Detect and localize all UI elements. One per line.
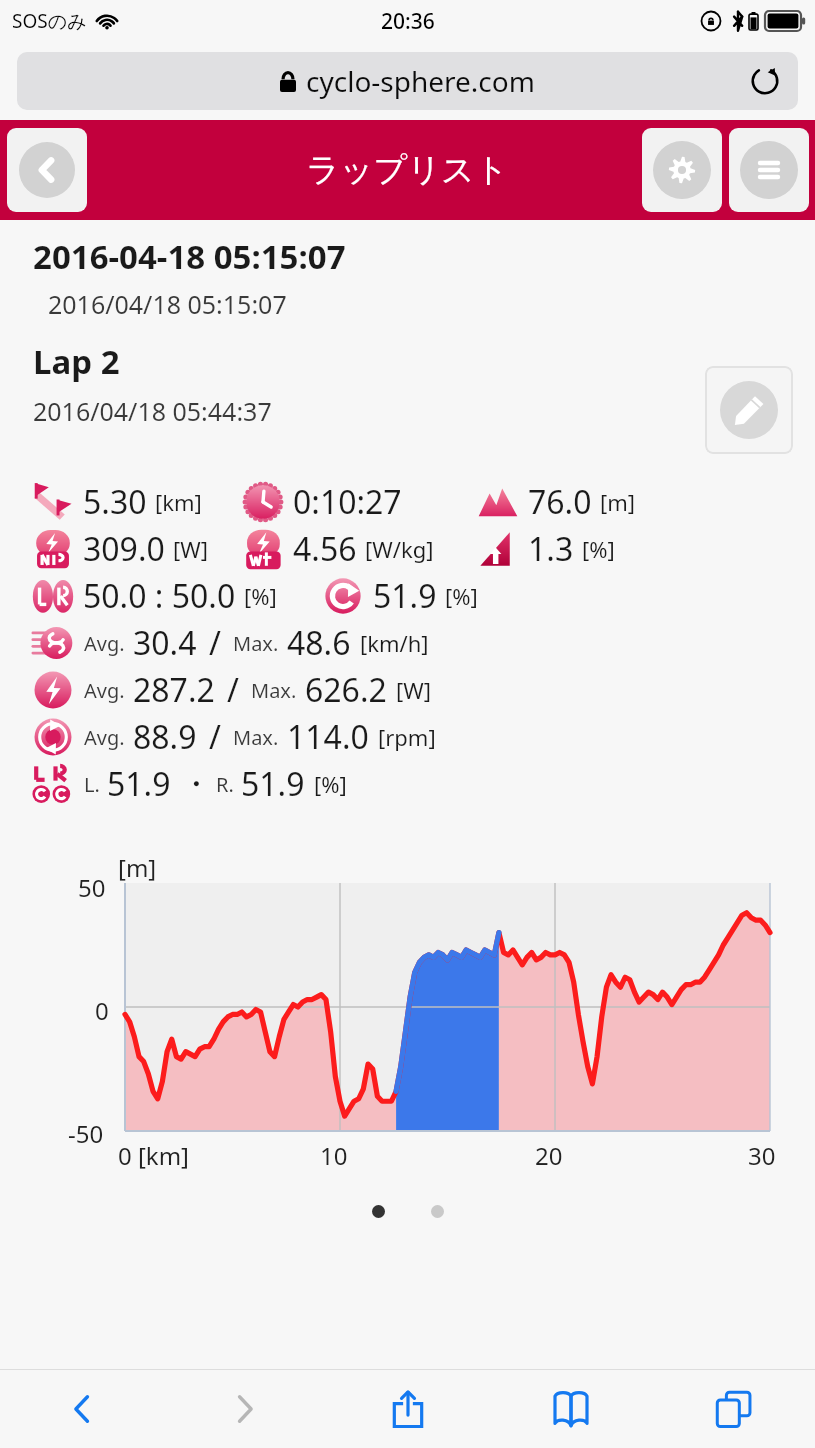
staticText: L.: [84, 771, 100, 798]
button[interactable]: Back: [0, 1370, 163, 1448]
staticText: ラップリスト: [306, 149, 509, 191]
staticText: 287.2: [133, 668, 215, 712]
staticText: 10: [320, 1139, 348, 1172]
button[interactable]: Bookmarks: [489, 1370, 652, 1448]
staticText: 0:10:27: [293, 480, 402, 524]
staticText: 2016/04/18 05:44:37: [33, 394, 272, 428]
staticText: Max.: [251, 677, 297, 704]
staticText: 0: [95, 994, 109, 1027]
button[interactable]: Menu: [729, 128, 809, 212]
staticText: 0 [km]: [118, 1139, 190, 1172]
staticText: 50: [78, 871, 106, 904]
staticText: [W]: [396, 675, 431, 705]
staticText: [km]: [155, 487, 202, 517]
staticText: Avg.: [84, 630, 125, 657]
staticText: [km/h]: [360, 628, 429, 658]
staticText: 30.4: [133, 621, 197, 665]
staticText: R.: [216, 771, 234, 798]
staticText: 50.0 : 50.0: [83, 574, 236, 618]
staticText: ・: [180, 764, 212, 804]
button[interactable]: Forward: [163, 1370, 326, 1448]
staticText: 30: [748, 1139, 776, 1172]
staticText: 20: [535, 1139, 563, 1172]
staticText: Avg.: [84, 677, 125, 704]
staticText: 48.6: [287, 621, 351, 665]
staticText: 4.56: [293, 527, 357, 571]
button[interactable]: Tabs: [652, 1370, 815, 1448]
staticText: 2016-04-18 05:15:07: [33, 234, 346, 279]
button[interactable]: Edit: [705, 366, 793, 454]
staticText: [m]: [600, 487, 636, 517]
staticText: [W/kg]: [365, 534, 434, 564]
staticText: 20:36: [381, 7, 435, 36]
staticText: [%]: [244, 581, 277, 611]
staticText: Avg.: [84, 724, 125, 751]
staticText: 626.2: [305, 668, 387, 712]
staticText: cyclo-sphere.com: [306, 62, 535, 100]
staticText: /: [209, 621, 221, 665]
staticText: Lap 2: [33, 339, 120, 384]
staticText: 1.3: [528, 527, 574, 571]
button[interactable]: Settings: [642, 128, 722, 212]
staticText: [%]: [582, 534, 615, 564]
staticText: Max.: [233, 724, 279, 751]
staticText: [rpm]: [378, 722, 436, 752]
staticText: [m]: [118, 851, 157, 884]
staticText: /: [209, 715, 221, 759]
staticText: 76.0: [528, 480, 592, 524]
staticText: [W]: [173, 534, 208, 564]
staticText: Max.: [233, 630, 279, 657]
staticText: 88.9: [133, 715, 197, 759]
button[interactable]: Reload: [748, 64, 782, 98]
staticText: /: [227, 668, 239, 712]
staticText: 51.9: [241, 762, 305, 806]
staticText: [%]: [314, 769, 347, 799]
button[interactable]: [431, 1205, 444, 1218]
staticText: 51.9: [107, 762, 171, 806]
staticText: 5.30: [83, 480, 147, 524]
button[interactable]: Share: [326, 1370, 489, 1448]
staticText: 51.9: [373, 574, 437, 618]
button[interactable]: [372, 1205, 385, 1218]
staticText: SOSのみ: [12, 8, 87, 34]
staticText: 114.0: [287, 715, 369, 759]
staticText: [%]: [445, 581, 478, 611]
staticText: 309.0: [83, 527, 165, 571]
button[interactable]: cyclo-sphere.com: [17, 52, 798, 110]
button[interactable]: Back: [7, 128, 87, 212]
staticText: 2016/04/18 05:15:07: [48, 287, 287, 321]
staticText: -50: [68, 1117, 104, 1150]
